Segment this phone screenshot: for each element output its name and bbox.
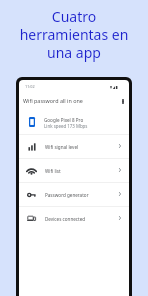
staticText: Google Pixel 8 Pro	[44, 117, 84, 123]
button[interactable]: Devices connected	[19, 207, 129, 230]
staticText: Devices connected	[45, 216, 86, 222]
staticText: Cuatro herramientas en una app	[0, 7, 148, 63]
button[interactable]: Password generator	[19, 183, 129, 206]
button[interactable]: Wifi list	[19, 159, 129, 182]
staticText: Link speed 173 Mbps	[44, 123, 88, 129]
button[interactable]: More options	[117, 92, 128, 105]
button[interactable]: Wifi signal level	[19, 135, 129, 158]
staticText: Password generator	[45, 192, 89, 198]
staticText: Wifi list	[45, 168, 61, 174]
staticText: Wifi signal level	[45, 144, 79, 150]
staticText: Wifi password all in one	[23, 97, 83, 104]
button[interactable]: Google Pixel 8 Pro	[19, 105, 129, 134]
staticText: 11:02	[25, 84, 35, 89]
